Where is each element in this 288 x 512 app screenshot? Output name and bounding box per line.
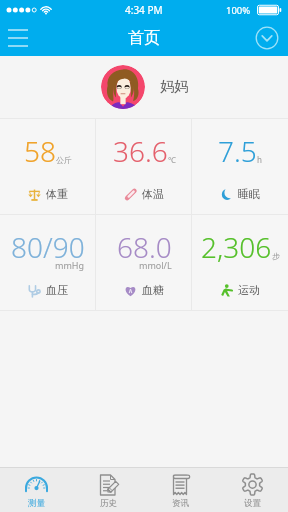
button[interactable]: 设置	[216, 468, 288, 512]
staticText: h	[257, 154, 262, 165]
staticText: 体温	[142, 187, 164, 201]
staticText: 2,306	[201, 228, 272, 266]
staticText: 血糖	[142, 283, 164, 297]
staticText: 血压	[46, 283, 68, 297]
button[interactable]: 2,306	[192, 215, 288, 310]
staticText: ℃	[168, 154, 176, 165]
staticText: 首页	[128, 28, 160, 48]
staticText: mmHg	[55, 259, 85, 271]
staticText: mmol/L	[139, 259, 172, 271]
staticText: 资讯	[172, 498, 189, 509]
button[interactable]: 妈妈	[0, 56, 288, 118]
button[interactable]: 历史	[72, 468, 144, 512]
staticText: 设置	[244, 498, 261, 509]
button[interactable]: Expand	[255, 26, 279, 50]
button[interactable]: 36.6	[96, 119, 192, 214]
staticText: 历史	[100, 498, 117, 509]
staticText: 体重	[46, 187, 68, 201]
button[interactable]: 58	[0, 119, 96, 214]
staticText: 36.6	[113, 132, 168, 170]
staticText: 4:34 PM	[125, 3, 163, 17]
button[interactable]: 测量	[0, 468, 72, 512]
staticText: 公斤	[56, 155, 72, 165]
button[interactable]: 80/90	[0, 215, 96, 310]
button[interactable]: 68.0	[96, 215, 192, 310]
staticText: 测量	[28, 498, 45, 509]
staticText: 68.0	[117, 228, 172, 266]
staticText: 80/90	[11, 228, 85, 266]
staticText: 步	[272, 251, 280, 261]
button[interactable]: 7.5	[192, 119, 288, 214]
staticText: 妈妈	[160, 78, 188, 96]
staticText: 58	[24, 132, 56, 170]
staticText: 运动	[238, 283, 260, 297]
staticText: 7.5	[218, 132, 257, 170]
staticText: 睡眠	[238, 187, 260, 201]
button[interactable]: 资讯	[144, 468, 216, 512]
staticText: 100%	[226, 4, 251, 17]
button[interactable]: Menu	[6, 22, 38, 54]
